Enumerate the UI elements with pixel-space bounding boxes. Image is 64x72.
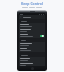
button[interactable] <box>19 23 45 28</box>
button[interactable]: Home <box>31 67 34 70</box>
button[interactable] <box>19 42 45 47</box>
button[interactable]: Keep Control <box>0 1 64 8</box>
button[interactable]: Back <box>20 16 22 18</box>
button[interactable]: Toggle <box>19 33 45 38</box>
button[interactable]: Back <box>19 15 45 19</box>
button[interactable] <box>19 62 45 66</box>
button[interactable]: Toggle <box>40 35 44 37</box>
staticText: Keep Control <box>21 1 43 6</box>
button[interactable] <box>19 47 45 52</box>
button[interactable] <box>19 57 45 62</box>
button[interactable] <box>19 28 45 33</box>
